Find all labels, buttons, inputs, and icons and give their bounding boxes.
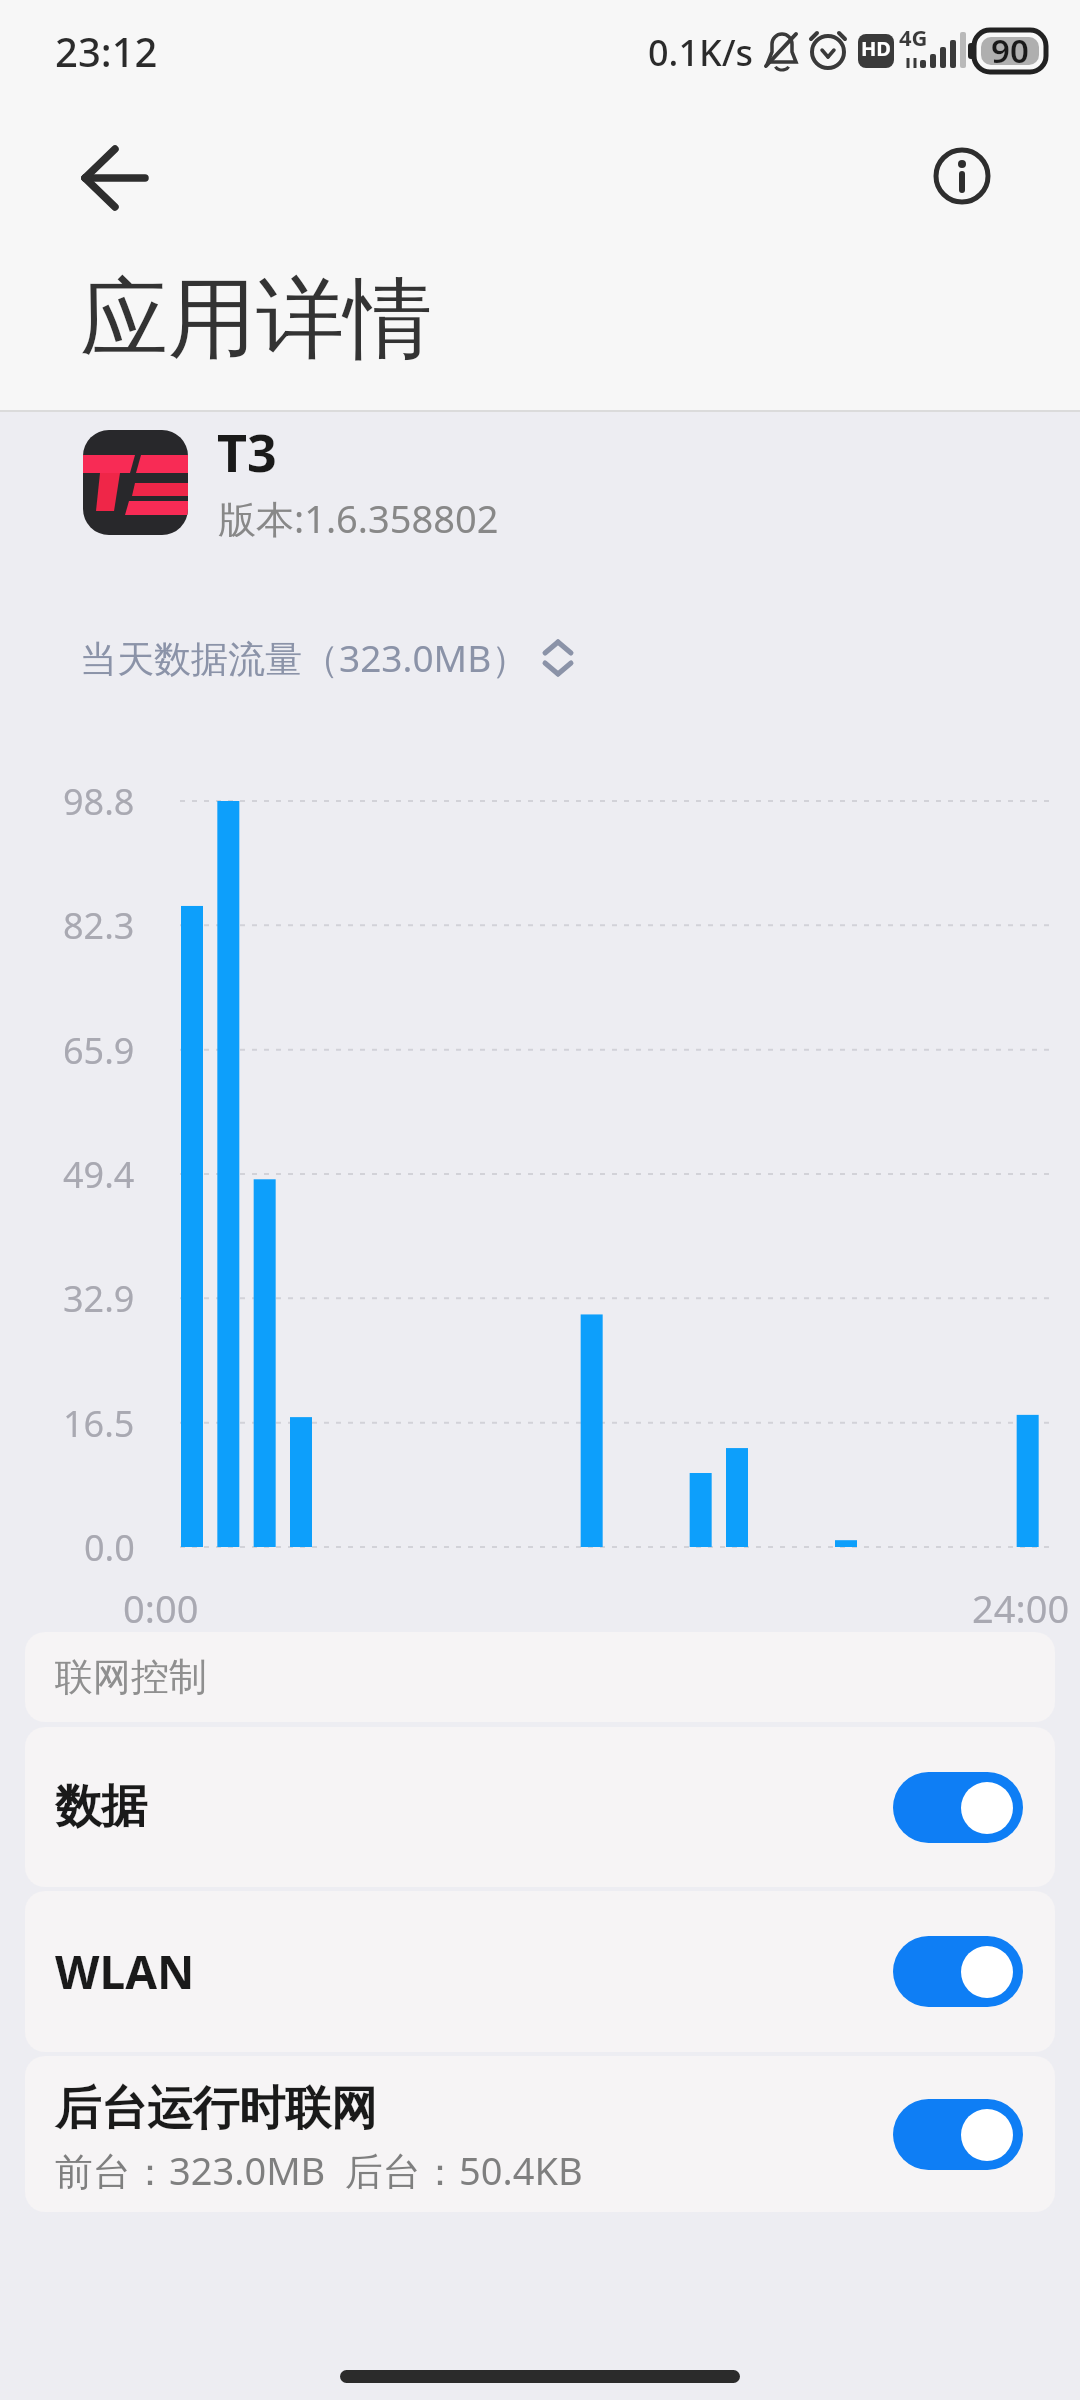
staticText: 65.9 [63, 1026, 135, 1075]
staticText: 82.3 [63, 901, 135, 950]
staticText: T3 [217, 416, 277, 487]
button[interactable]: WLAN [25, 1891, 1055, 2052]
staticText: 数据 [55, 1778, 147, 1836]
staticText: HD [861, 35, 891, 62]
button[interactable] [893, 2099, 1023, 2170]
staticText: 0.0 [84, 1523, 135, 1572]
staticText: 0:00 [123, 1582, 199, 1634]
staticText: 32.9 [63, 1274, 135, 1323]
staticText: 应用详情 [80, 264, 432, 375]
button[interactable] [893, 1936, 1023, 2007]
staticText: 0.1K/s [648, 28, 754, 77]
staticText: 版本:1.6.358802 [218, 492, 499, 544]
staticText: 4G [899, 22, 928, 52]
staticText: 90 [991, 28, 1029, 73]
staticText: WLAN [55, 1940, 195, 2003]
staticText: 98.8 [63, 777, 135, 826]
button[interactable]: 数据 [25, 1727, 1055, 1887]
staticText: 23:12 [55, 24, 158, 78]
button[interactable]: 联网控制 [25, 1632, 1055, 1722]
staticText: 当天数据流量（323.0MB） [80, 632, 529, 683]
staticText: 联网控制 [55, 1653, 207, 1701]
button[interactable] [66, 128, 166, 228]
staticText: 16.5 [63, 1399, 135, 1448]
button[interactable] [912, 126, 1012, 226]
button[interactable]: 当天数据流量（323.0MB） [80, 632, 573, 683]
button[interactable] [893, 1772, 1023, 1843]
staticText: 49.4 [63, 1150, 135, 1199]
staticText: 后台运行时联网 [55, 2080, 377, 2138]
staticText: 前台：323.0MB 后台：50.4KB [55, 2144, 583, 2196]
staticText: 24:00 [972, 1582, 1070, 1634]
button[interactable]: 后台运行时联网 [25, 2056, 1055, 2212]
